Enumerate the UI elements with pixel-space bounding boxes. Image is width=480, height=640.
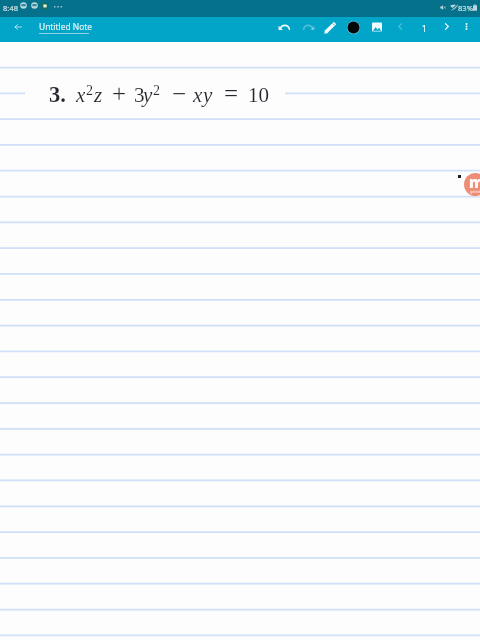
staticText: 8:48 [3, 3, 19, 13]
staticText: x [193, 83, 203, 106]
staticText: 2 [86, 83, 93, 99]
staticText: y [143, 83, 153, 106]
staticText: 3. [49, 82, 66, 107]
staticText: z [94, 83, 103, 106]
button[interactable]: Previous page [391, 17, 410, 36]
button[interactable]: Sticker [464, 173, 480, 196]
button[interactable]: Colour [342, 16, 365, 39]
staticText: 2 [153, 83, 160, 99]
staticText: 10 [248, 83, 269, 106]
button[interactable]: Back [9, 18, 27, 36]
button[interactable]: More options [458, 18, 475, 35]
button[interactable]: Undo [273, 16, 296, 39]
button[interactable]: Insert image [367, 17, 387, 37]
staticText: 83% [458, 3, 473, 13]
staticText: = [224, 80, 239, 108]
staticText: y [203, 83, 213, 106]
button[interactable]: Untitled Note [39, 21, 92, 32]
staticText: 1 [422, 23, 427, 34]
staticText: − [172, 80, 187, 108]
staticText: + [112, 80, 127, 108]
button[interactable]: Next page [437, 17, 456, 36]
staticText: 3 [134, 83, 145, 106]
button[interactable]: Pen [319, 16, 342, 39]
button[interactable]: 1 [414, 17, 430, 33]
staticText: get ink [470, 189, 480, 194]
staticText: x [76, 83, 86, 106]
button[interactable]: Redo [297, 16, 320, 39]
staticText: m [469, 173, 480, 192]
